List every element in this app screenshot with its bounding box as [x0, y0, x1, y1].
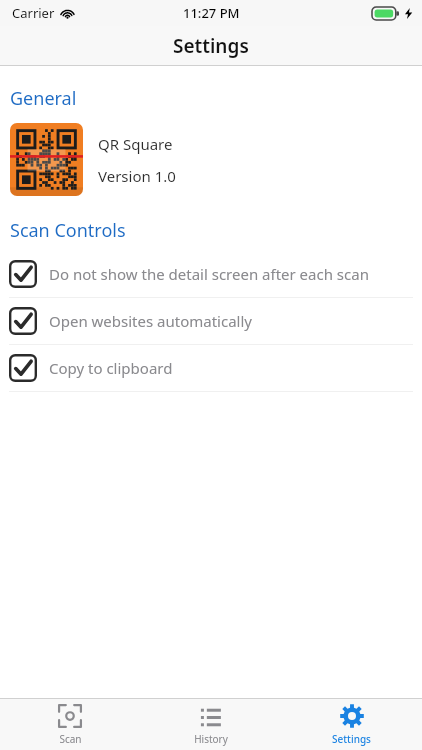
- staticText: QR Square: [98, 134, 173, 154]
- staticText: Do not show the detail screen after each…: [49, 264, 369, 284]
- staticText: Scan Controls: [10, 218, 126, 243]
- staticText: Scan: [59, 732, 82, 746]
- button[interactable]: Copy to clipboard: [0, 345, 422, 391]
- button[interactable]: Do not show the detail screen after each…: [0, 251, 422, 297]
- staticText: General: [10, 86, 77, 111]
- button[interactable]: Scan: [0, 699, 140, 750]
- staticText: Version 1.0: [98, 166, 176, 186]
- button[interactable]: Open websites automatically: [0, 298, 422, 344]
- staticText: Copy to clipboard: [49, 358, 173, 378]
- staticText: Carrier: [12, 4, 55, 22]
- button[interactable]: Settings: [281, 699, 422, 750]
- staticText: 11:27 PM: [183, 4, 240, 22]
- staticText: Settings: [173, 33, 249, 59]
- button[interactable]: History: [140, 699, 281, 750]
- staticText: Open websites automatically: [49, 311, 252, 331]
- staticText: History: [194, 732, 228, 746]
- staticText: Settings: [332, 732, 371, 746]
